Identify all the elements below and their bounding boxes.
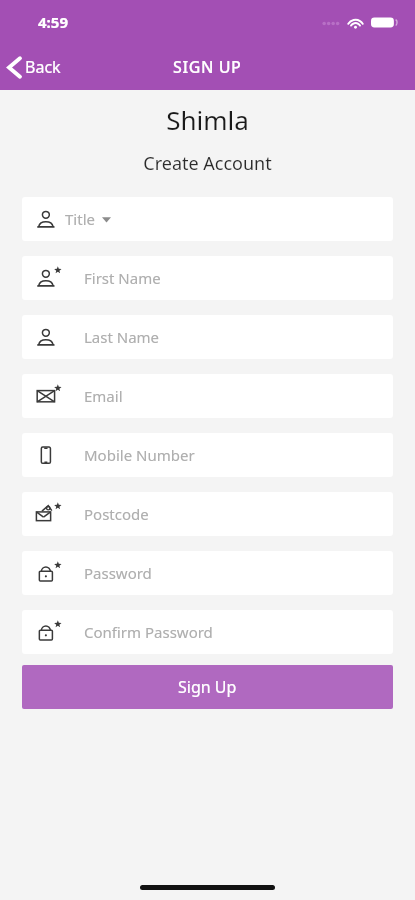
- staticText: Mobile Number: [84, 445, 195, 465]
- button[interactable]: Email: [22, 374, 393, 418]
- button[interactable]: First Name: [22, 256, 393, 300]
- staticText: Last Name: [84, 327, 160, 347]
- button[interactable]: Sign Up: [22, 665, 393, 709]
- staticText: Back: [25, 56, 61, 78]
- button[interactable]: Confirm Password: [22, 610, 393, 654]
- staticText: 4:59: [38, 12, 68, 32]
- staticText: Title: [65, 209, 95, 229]
- button[interactable]: Last Name: [22, 315, 393, 359]
- button[interactable]: Mobile Number: [22, 433, 393, 477]
- staticText: Confirm Password: [84, 622, 213, 642]
- staticText: SIGN UP: [173, 56, 242, 78]
- staticText: Postcode: [84, 504, 149, 524]
- staticText: Sign Up: [178, 676, 237, 698]
- button[interactable]: Back: [0, 50, 71, 84]
- button[interactable]: Postcode: [22, 492, 393, 536]
- staticText: First Name: [84, 268, 161, 288]
- staticText: Email: [84, 386, 123, 406]
- staticText: Create Account: [0, 151, 415, 176]
- staticText: Shimla: [0, 102, 415, 137]
- staticText: Password: [84, 563, 152, 583]
- button[interactable]: Password: [22, 551, 393, 595]
- button[interactable]: Title: [22, 197, 393, 241]
